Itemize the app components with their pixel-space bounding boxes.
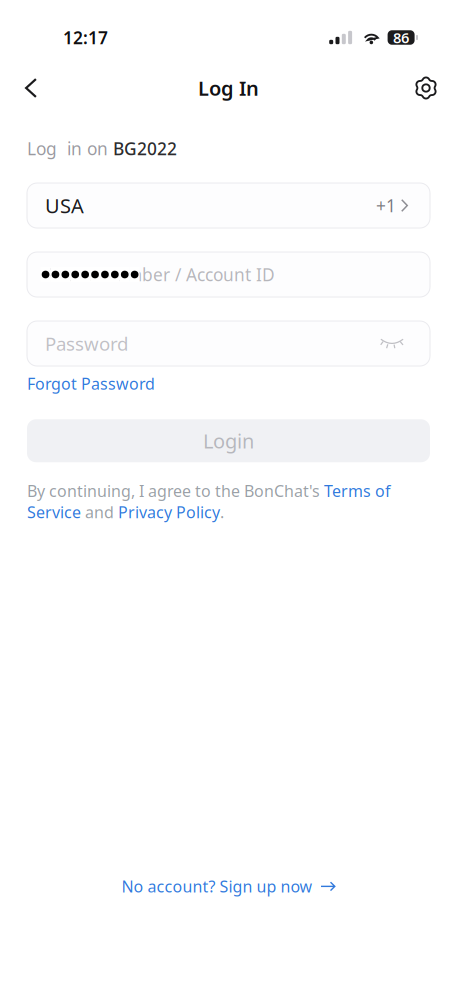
staticText: By continuing, I agree to the BonChat's xyxy=(27,480,324,501)
staticText: 12:17 xyxy=(63,26,108,49)
staticText: USA xyxy=(45,192,84,219)
staticText: 86 xyxy=(393,28,409,47)
button[interactable]: Back xyxy=(9,66,53,110)
staticText: Terms of xyxy=(324,480,391,501)
staticText: Log in on xyxy=(27,137,113,160)
button[interactable]: Terms of xyxy=(324,480,391,501)
staticText: . xyxy=(220,501,224,523)
staticText: Phone Number / Account ID xyxy=(45,263,275,286)
staticText: Service xyxy=(27,501,81,523)
button[interactable]: Service xyxy=(27,501,81,523)
button[interactable]: Show password xyxy=(380,338,404,349)
staticText: Login xyxy=(203,427,254,454)
staticText: and xyxy=(81,501,118,523)
staticText: Password xyxy=(45,331,128,356)
button[interactable]: Settings xyxy=(404,66,448,110)
staticText: Forgot Password xyxy=(27,373,155,394)
staticText: BG2022 xyxy=(113,137,177,160)
button[interactable]: Privacy Policy xyxy=(118,501,220,523)
staticText: Privacy Policy xyxy=(118,501,220,523)
button[interactable]: Forgot Password xyxy=(27,370,155,397)
button[interactable]: USA xyxy=(27,183,430,228)
button[interactable]: Login xyxy=(27,419,430,462)
staticText: No account? Sign up now xyxy=(121,876,312,897)
staticText: +1 xyxy=(376,194,396,217)
button[interactable]: No account? Sign up now xyxy=(0,866,457,907)
staticText: Log In xyxy=(198,75,259,101)
